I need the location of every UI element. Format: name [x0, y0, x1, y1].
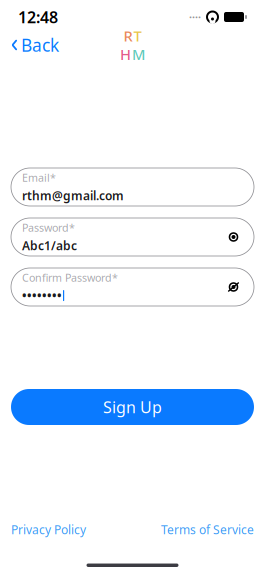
staticText: R — [123, 26, 132, 45]
staticText: Terms of Service — [161, 522, 254, 537]
button[interactable]: Show password — [223, 278, 244, 296]
staticText: Sign Up — [103, 396, 162, 418]
staticText: Back — [21, 33, 59, 56]
staticText: Abc1/abc — [22, 238, 77, 253]
staticText: H — [120, 44, 131, 64]
button[interactable]: Terms of Service — [161, 518, 254, 541]
button[interactable]: Back — [3, 27, 67, 62]
button[interactable]: Hide password — [223, 228, 244, 246]
staticText: •••••••• — [22, 288, 62, 303]
staticText: Password* — [22, 220, 75, 235]
staticText: Confirm Password* — [22, 270, 118, 285]
staticText: M — [132, 44, 145, 64]
staticText: Privacy Policy — [11, 522, 86, 537]
button[interactable]: Privacy Policy — [11, 518, 86, 541]
staticText: ···· — [189, 10, 201, 24]
staticText: Email* — [22, 170, 56, 185]
staticText: T — [133, 26, 141, 45]
staticText: rthm@gmail.com — [22, 188, 124, 203]
staticText: 12:48 — [18, 6, 58, 28]
button[interactable]: Sign Up — [11, 389, 254, 425]
